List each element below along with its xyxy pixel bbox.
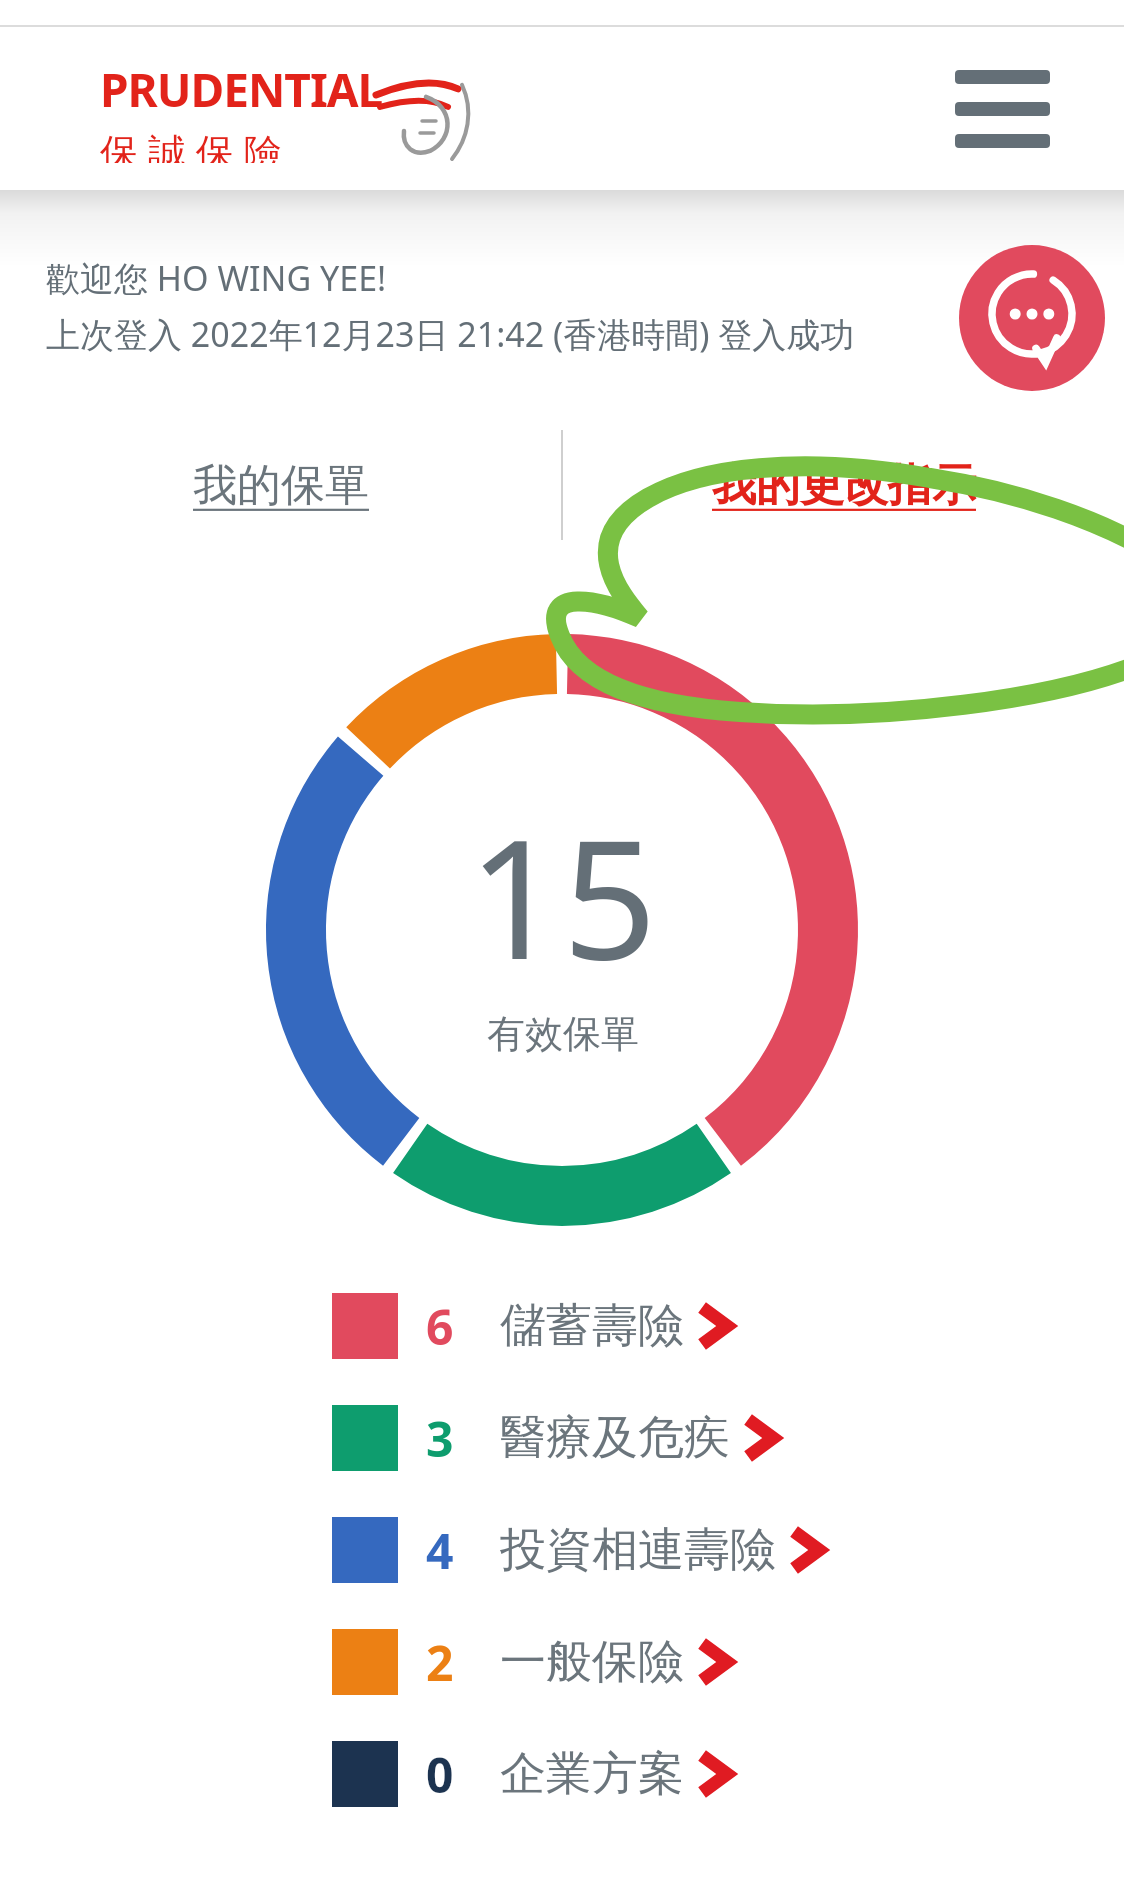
button[interactable]: 2	[0, 1606, 1124, 1718]
staticText: 保 誠 保 險	[100, 125, 282, 163]
staticText: 我的保單	[193, 458, 369, 513]
staticText: 6	[426, 1294, 454, 1359]
staticText: 上次登入 2022年12月23日 21:42 (香港時間) 登入成功	[46, 311, 855, 357]
button[interactable]: 我的保單	[169, 442, 393, 529]
staticText: 企業方案	[500, 1745, 684, 1803]
staticText: 醫療及危疾	[500, 1409, 730, 1467]
button[interactable]: 3	[0, 1382, 1124, 1494]
button[interactable]: Menu	[942, 54, 1062, 164]
staticText: 有效保單	[487, 1010, 639, 1058]
staticText: 2	[426, 1630, 454, 1695]
staticText: PRUDENTIAL	[100, 58, 383, 121]
staticText: 儲蓄壽險	[500, 1297, 684, 1355]
staticText: 一般保險	[500, 1633, 684, 1691]
staticText: 3	[426, 1406, 454, 1471]
button[interactable]: Chat	[959, 245, 1105, 391]
staticText: 歡迎您 HO WING YEE!	[46, 255, 387, 301]
staticText: 投資相連壽險	[500, 1521, 776, 1579]
staticText: 4	[426, 1518, 454, 1583]
staticText: 0	[426, 1742, 454, 1807]
button[interactable]: 0	[0, 1718, 1124, 1830]
staticText: 15	[468, 783, 657, 1008]
button[interactable]: 我的更改指示	[688, 442, 1000, 529]
button[interactable]: 4	[0, 1494, 1124, 1606]
staticText: 我的更改指示	[712, 458, 976, 513]
button[interactable]: 6	[0, 1270, 1124, 1382]
